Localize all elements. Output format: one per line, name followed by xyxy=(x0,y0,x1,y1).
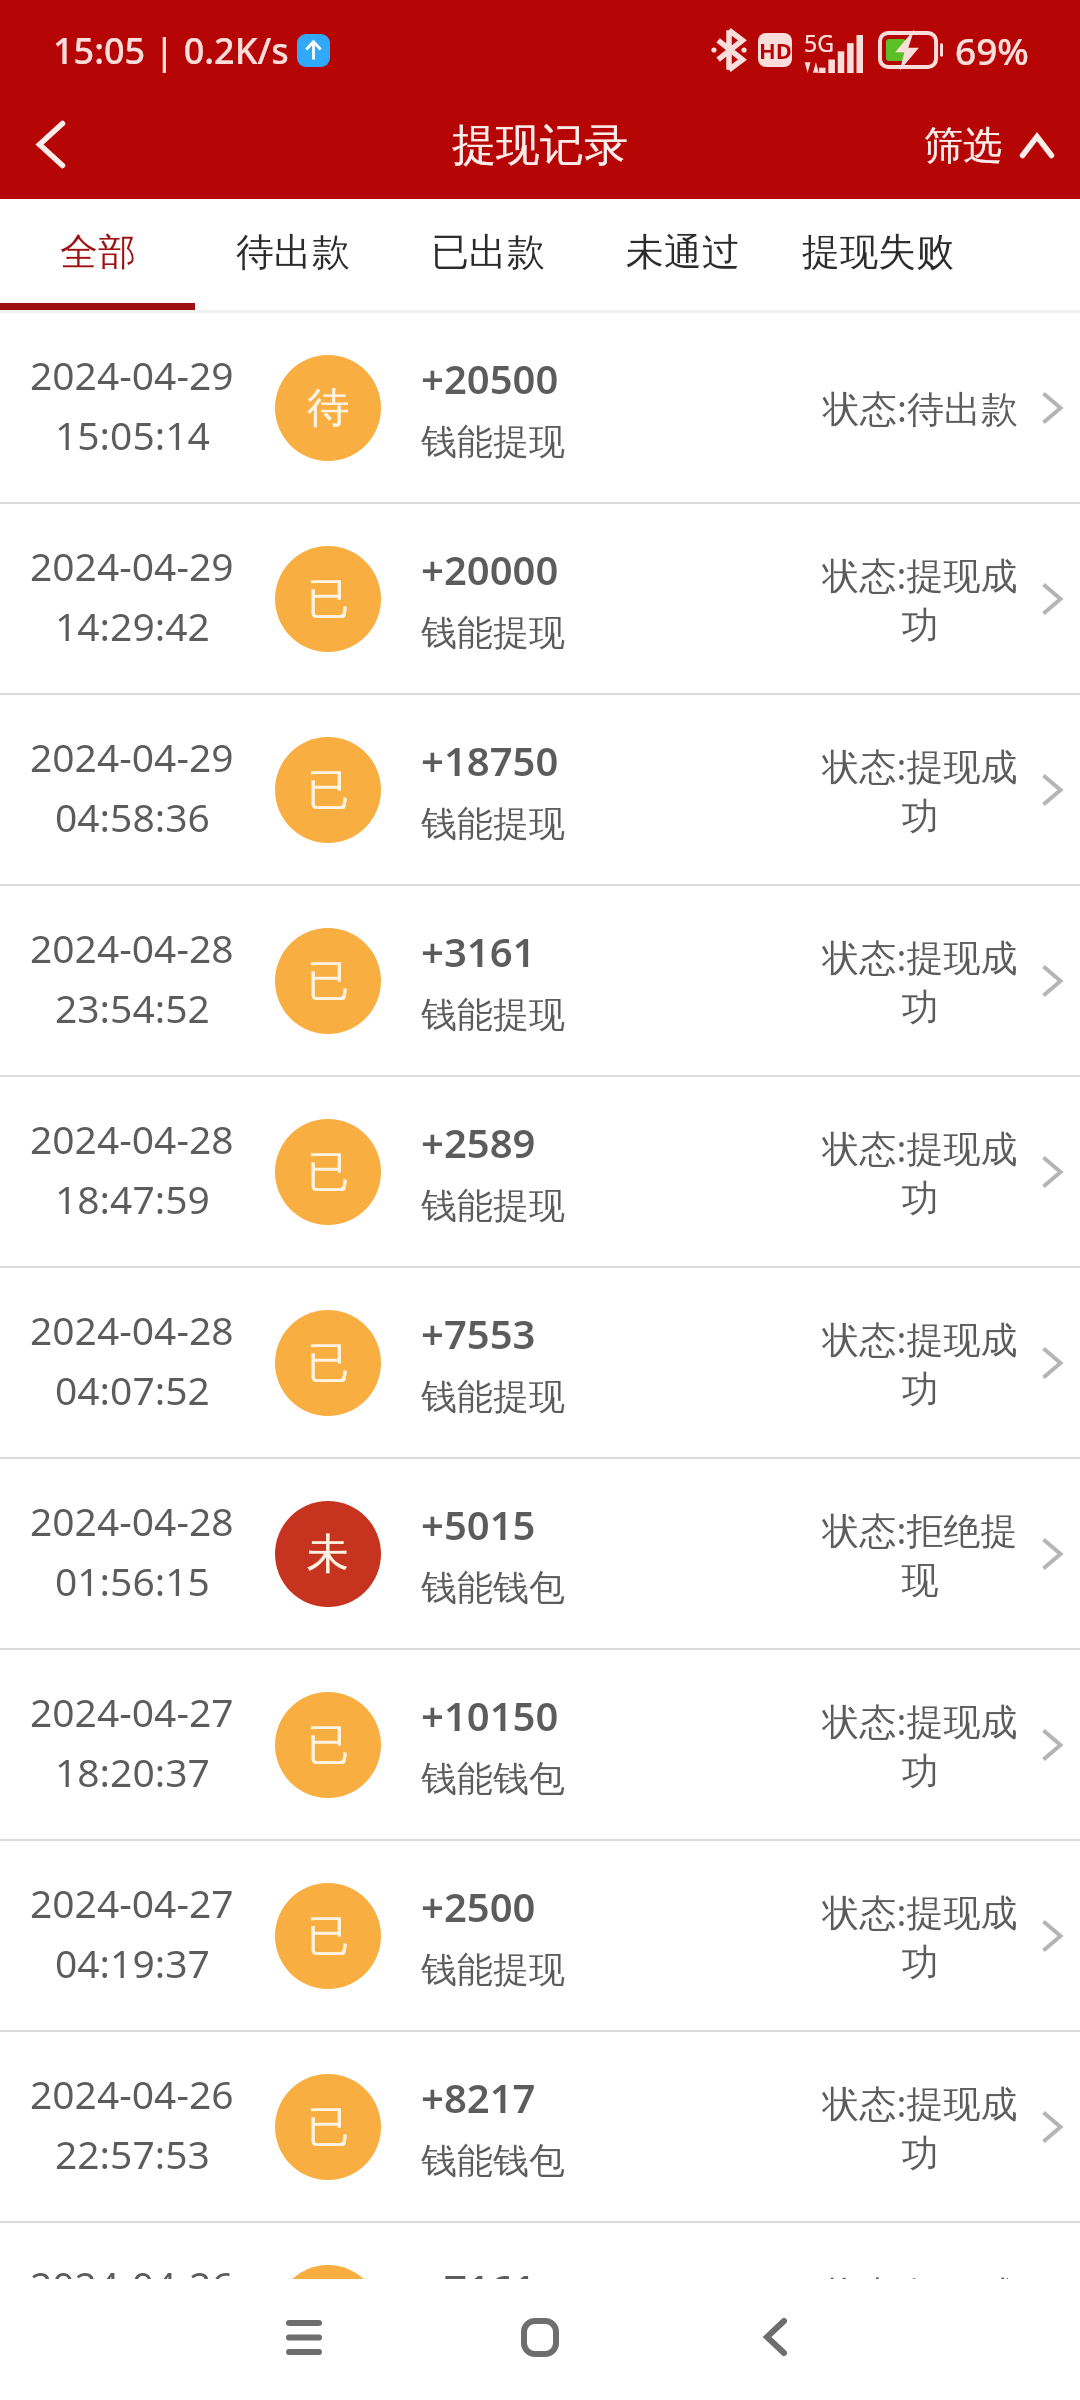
staticText: 钱能提现 xyxy=(421,801,565,846)
button[interactable]: 2024-04-27 xyxy=(0,1841,1080,2030)
button[interactable]: 2024-04-29 xyxy=(0,695,1080,884)
staticText: 04:58:36 xyxy=(55,790,210,843)
button[interactable]: 2024-04-29 xyxy=(0,504,1080,693)
staticText: 钱能提现 xyxy=(421,610,565,655)
staticText: 状态:提现成功 xyxy=(820,931,1020,1031)
button[interactable]: Recent apps xyxy=(256,2289,352,2385)
staticText: +5015 xyxy=(421,1497,536,1551)
staticText: 2024-04-28 xyxy=(30,1112,234,1165)
other: View details xyxy=(1042,1920,1062,1952)
button[interactable]: 已出款 xyxy=(390,199,585,304)
other: View details xyxy=(1042,1156,1062,1188)
other: View details xyxy=(1042,1347,1062,1379)
other: View details xyxy=(1042,1729,1062,1761)
button[interactable]: 2024-04-28 xyxy=(0,1459,1080,1648)
staticText: 未通过 xyxy=(626,228,740,276)
staticText: 提现失败 xyxy=(802,228,954,276)
button[interactable]: 2024-04-28 xyxy=(0,1077,1080,1266)
staticText: 已 xyxy=(307,2101,349,2154)
button[interactable]: 全部 xyxy=(0,199,195,304)
staticText: 15:05:14 xyxy=(55,408,210,461)
staticText: 14:29:42 xyxy=(55,599,210,652)
staticText: 钱能提现 xyxy=(421,992,565,1037)
button[interactable]: 2024-04-27 xyxy=(0,1650,1080,1839)
staticText: 2024-04-27 xyxy=(30,1876,234,1929)
staticText: 2024-04-28 xyxy=(30,1303,234,1356)
staticText: 2024-04-28 xyxy=(30,921,234,974)
button[interactable]: 2024-04-29 xyxy=(0,313,1080,502)
button[interactable]: 筛选 xyxy=(912,109,1080,182)
staticText: 15:05 | 0.2K/s xyxy=(53,26,289,75)
staticText: 状态:提现成功 xyxy=(820,740,1020,840)
staticText: 钱能提现 xyxy=(421,1947,565,1992)
staticText: 状态:拒绝提现 xyxy=(820,1504,1020,1604)
staticText: 钱能提现 xyxy=(421,1374,565,1419)
staticText: 已 xyxy=(307,1337,349,1390)
staticText: 钱能钱包 xyxy=(421,1756,565,1801)
staticText: 状态:提现成功 xyxy=(820,1695,1020,1795)
button[interactable]: 2024-04-26 xyxy=(0,2032,1080,2221)
staticText: 5G xyxy=(804,27,834,58)
staticText: 2024-04-26 xyxy=(30,2067,234,2120)
staticText: 待 xyxy=(307,382,349,435)
staticText: +2589 xyxy=(421,1115,536,1169)
staticText: 2024-04-29 xyxy=(30,730,234,783)
staticText: 已 xyxy=(307,764,349,817)
staticText: 2024-04-28 xyxy=(30,1494,234,1547)
button[interactable]: 待出款 xyxy=(195,199,390,304)
staticText: 钱能提现 xyxy=(421,419,565,464)
staticText: +18750 xyxy=(421,733,559,787)
staticText: 未 xyxy=(307,1528,349,1581)
staticText: 2024-04-29 xyxy=(30,348,234,401)
staticText: 钱能钱包 xyxy=(421,2138,565,2183)
staticText: 全部 xyxy=(60,228,136,276)
button[interactable]: 2024-04-28 xyxy=(0,1268,1080,1457)
staticText: 2024-04-26 xyxy=(30,2258,234,2279)
staticText: 已 xyxy=(307,1910,349,1963)
other: View details xyxy=(1042,965,1062,997)
staticText: +20000 xyxy=(421,542,559,596)
staticText: 18:47:59 xyxy=(55,1172,210,1225)
staticText: +8217 xyxy=(421,2070,536,2124)
staticText: 已出款 xyxy=(431,228,545,276)
button[interactable]: Back xyxy=(1,95,101,194)
button[interactable]: Home xyxy=(492,2289,588,2385)
button[interactable]: 未通过 xyxy=(585,199,780,304)
staticText: +7161 xyxy=(421,2261,536,2279)
button[interactable]: Back xyxy=(727,2289,823,2385)
staticText: 已 xyxy=(307,573,349,626)
other: View details xyxy=(1042,1538,1062,1570)
button[interactable]: 2024-04-26 xyxy=(0,2223,1080,2279)
staticText: HD xyxy=(759,35,792,65)
staticText: +10150 xyxy=(421,1688,559,1742)
staticText: 待出款 xyxy=(236,228,350,276)
staticText: 已 xyxy=(307,1719,349,1772)
button[interactable]: 2024-04-28 xyxy=(0,886,1080,1075)
staticText: +2500 xyxy=(421,1879,536,1933)
staticText: 18:20:37 xyxy=(55,1745,210,1798)
staticText: 钱能钱包 xyxy=(421,1565,565,1610)
staticText: 已 xyxy=(307,955,349,1008)
staticText: 01:56:15 xyxy=(55,1554,210,1607)
other: View details xyxy=(1042,583,1062,615)
staticText: +20500 xyxy=(421,351,559,405)
staticText: 状态:提现成功 xyxy=(820,1122,1020,1222)
staticText: 04:19:37 xyxy=(55,1936,210,1989)
other: View details xyxy=(1042,392,1062,424)
staticText: 2024-04-27 xyxy=(30,1685,234,1738)
staticText: 状态:提现成功 xyxy=(820,1313,1020,1413)
staticText: 状态:提现成功 xyxy=(820,1886,1020,1986)
staticText: 钱能提现 xyxy=(421,1183,565,1228)
other: View details xyxy=(1042,774,1062,806)
staticText: 22:57:53 xyxy=(55,2127,210,2180)
staticText: +3161 xyxy=(421,924,536,978)
button[interactable]: 提现失败 xyxy=(780,199,975,304)
staticText: 状态:提现成功 xyxy=(820,549,1020,649)
other: View details xyxy=(1042,2111,1062,2143)
staticText: 筛选 xyxy=(924,121,1002,170)
staticText: 状态:提现成功 xyxy=(820,2268,1020,2279)
staticText: 04:07:52 xyxy=(55,1363,210,1416)
staticText: 状态:提现成功 xyxy=(820,2077,1020,2177)
staticText: +7553 xyxy=(421,1306,536,1360)
staticText: 2024-04-29 xyxy=(30,539,234,592)
